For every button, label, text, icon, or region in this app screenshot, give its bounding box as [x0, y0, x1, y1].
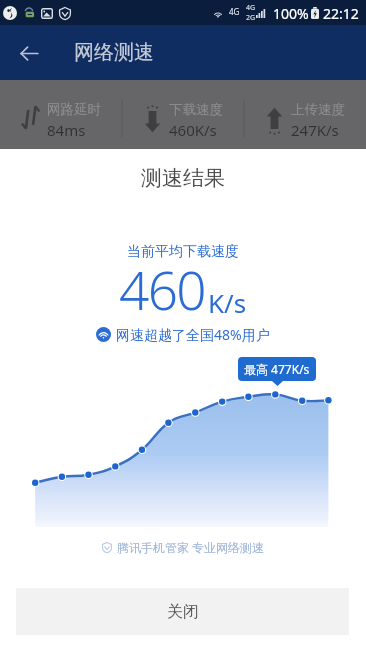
staticText: 247K/s: [291, 120, 339, 140]
staticText: 最高 477K/s: [244, 361, 310, 377]
staticText: 关闭: [167, 602, 199, 622]
button[interactable]: Back: [13, 37, 45, 69]
staticText: 腾讯手机管家 专业网络测速: [117, 539, 265, 555]
staticText: 22:12: [323, 4, 359, 23]
button[interactable]: 上传速度: [244, 80, 366, 149]
staticText: 460: [119, 253, 205, 325]
staticText: 网路延时: [47, 101, 101, 118]
button[interactable]: 网路延时: [0, 80, 122, 149]
staticText: 2G: [246, 13, 256, 23]
staticText: K/s: [208, 285, 247, 320]
staticText: 网速超越了全国48%用户: [116, 325, 270, 344]
staticText: 100%: [273, 4, 309, 23]
staticText: 460K/s: [169, 120, 217, 140]
staticText: 网络测速: [74, 40, 154, 65]
staticText: 4G: [246, 3, 256, 13]
staticText: 4G: [229, 6, 240, 17]
staticText: 测速结果: [141, 165, 225, 191]
button[interactable]: 关闭: [16, 588, 349, 635]
staticText: 上传速度: [291, 101, 345, 118]
button[interactable]: 最高 477K/s: [238, 357, 316, 381]
button[interactable]: 下载速度: [122, 80, 244, 149]
staticText: 当前平均下载速度: [127, 243, 239, 261]
staticText: 84ms: [47, 120, 86, 140]
staticText: 下载速度: [169, 101, 223, 118]
